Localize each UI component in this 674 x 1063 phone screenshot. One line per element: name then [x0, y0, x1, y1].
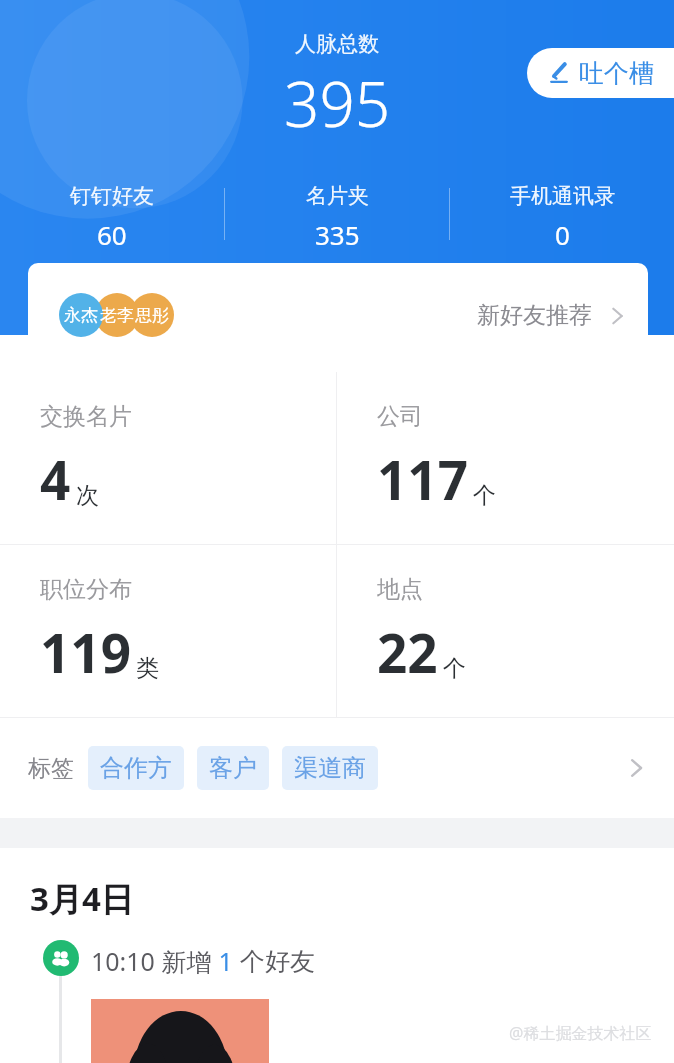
- staticText: 3月4日: [30, 876, 134, 921]
- button[interactable]: [91, 999, 269, 1063]
- button[interactable]: 公司: [337, 372, 674, 544]
- staticText: 标签: [28, 754, 74, 783]
- button[interactable]: 交换名片: [0, 372, 336, 544]
- staticText: 人脉总数: [295, 31, 379, 57]
- button[interactable]: 职位分布: [0, 545, 336, 717]
- staticText: @稀土掘金技术社区: [509, 1022, 652, 1044]
- staticText: 4: [40, 443, 71, 515]
- staticText: 335: [315, 217, 360, 252]
- staticText: 渠道商: [294, 753, 366, 783]
- staticText: 个: [443, 654, 466, 683]
- staticText: 次: [76, 481, 99, 510]
- staticText: 公司: [377, 402, 423, 431]
- button[interactable]: 永杰: [28, 263, 648, 367]
- staticText: 60: [97, 217, 127, 252]
- staticText: 地点: [377, 575, 423, 604]
- staticText: 0: [555, 217, 570, 252]
- staticText: 117: [377, 443, 468, 515]
- button[interactable]: 吐个槽: [527, 48, 674, 98]
- button[interactable]: 地点: [337, 545, 674, 717]
- staticText: 名片夹: [306, 183, 369, 209]
- staticText: 22: [377, 616, 438, 688]
- staticText: 客户: [209, 753, 257, 783]
- button[interactable]: 渠道商: [282, 746, 378, 790]
- staticText: 类: [136, 654, 159, 683]
- staticText: 交换名片: [40, 402, 132, 431]
- button[interactable]: 手机通讯录: [450, 180, 674, 252]
- staticText: 合作方: [100, 753, 172, 783]
- staticText: 个: [473, 481, 496, 510]
- button[interactable]: 合作方: [88, 746, 184, 790]
- staticText: 手机通讯录: [510, 183, 615, 209]
- staticText: 吐个槽: [579, 58, 654, 89]
- staticText: 职位分布: [40, 575, 132, 604]
- button[interactable]: 客户: [197, 746, 269, 790]
- staticText: 老李: [100, 305, 134, 326]
- other: 新增好友: [43, 940, 79, 976]
- button[interactable]: 名片夹: [225, 180, 449, 252]
- staticText: 个好友: [240, 946, 315, 977]
- button[interactable]: 标签: [0, 718, 674, 818]
- staticText: 永杰: [64, 305, 98, 326]
- staticText: 钉钉好友: [70, 183, 154, 209]
- staticText: 新好友推荐: [477, 301, 592, 330]
- staticText: 10:10 新增: [91, 944, 212, 978]
- staticText: 思彤: [135, 305, 169, 326]
- staticText: 119: [40, 616, 131, 688]
- staticText: 395: [284, 61, 391, 145]
- button[interactable]: 钉钉好友: [0, 180, 224, 252]
- staticText: 1: [212, 944, 240, 978]
